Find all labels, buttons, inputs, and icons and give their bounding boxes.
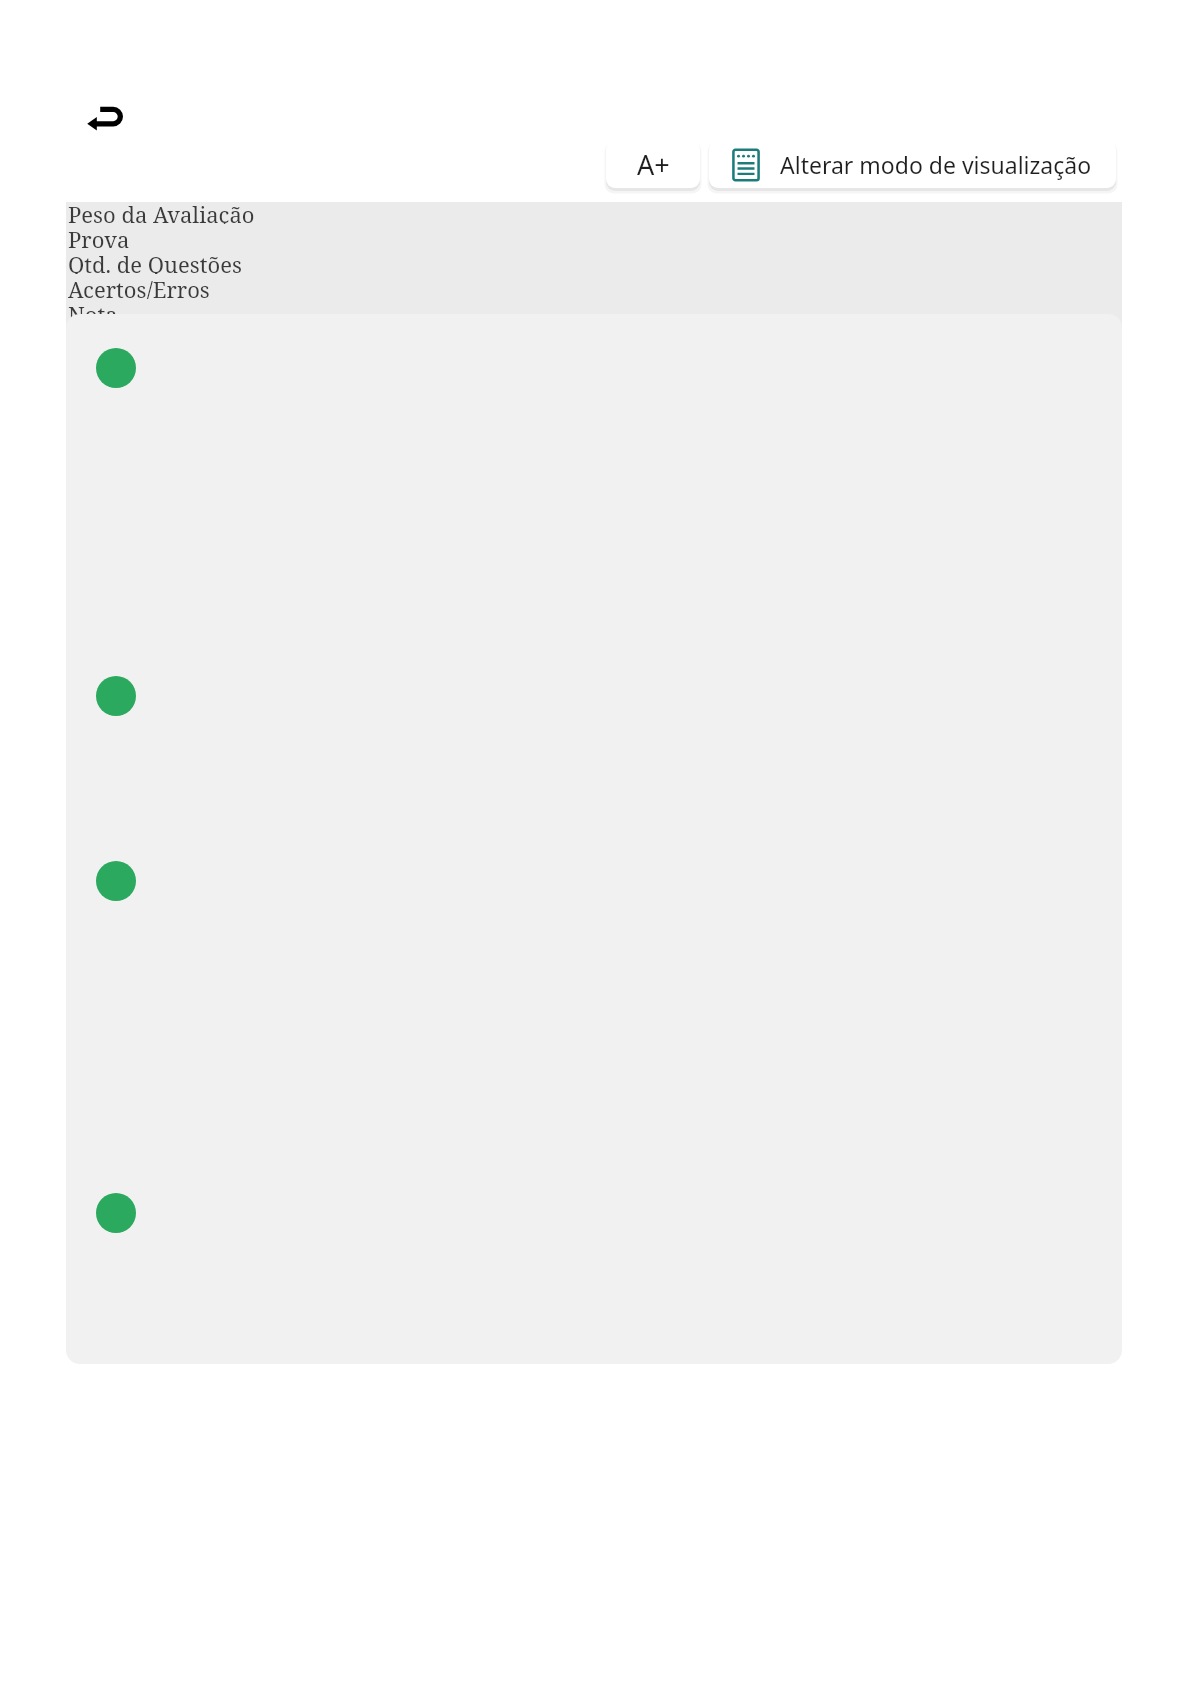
staticText: Peso da Avaliação <box>68 199 255 224</box>
button[interactable] <box>66 314 1122 888</box>
staticText: Nota <box>68 299 118 324</box>
button[interactable]: Voltar <box>78 92 132 146</box>
staticText: Qtd. de Questões <box>68 249 242 274</box>
staticText: Prova <box>68 224 130 249</box>
other: Alterar modo de visualização <box>729 148 763 182</box>
staticText: A+ <box>637 146 670 183</box>
staticText: Acertos/Erros <box>68 274 210 299</box>
button[interactable]: A+ <box>606 141 700 188</box>
staticText: Alterar modo de visualização <box>780 149 1092 180</box>
button[interactable]: Alterar modo de visualização <box>709 141 1116 188</box>
button[interactable] <box>66 828 1122 1364</box>
